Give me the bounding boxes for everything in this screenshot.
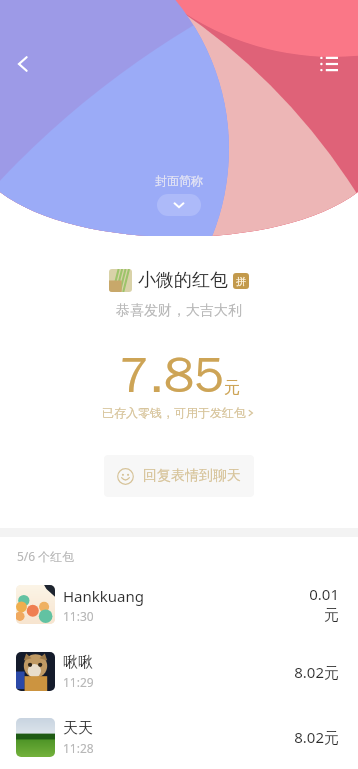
staticText: 小微的红包 [138, 269, 228, 292]
staticText: 5/6 个红包 [17, 548, 75, 564]
staticText: 8.02元 [294, 727, 339, 747]
button[interactable]: Back [5, 46, 41, 82]
staticText: 回复表情到聊天 [143, 467, 241, 485]
staticText: Hankkuang [63, 586, 145, 606]
button[interactable]: Expand cover [157, 194, 201, 216]
staticText: 7.85 [119, 344, 224, 407]
staticText: 0.01 [309, 584, 339, 604]
staticText: 11:28 [63, 740, 94, 756]
staticText: 恭喜发财，大吉大利 [116, 302, 242, 320]
staticText: 封面简称 [155, 173, 203, 188]
staticText: 元 [324, 606, 339, 625]
button[interactable]: Menu [311, 46, 347, 82]
staticText: 已存入零钱，可用于发红包 [102, 405, 246, 420]
staticText: 11:30 [63, 608, 94, 624]
button[interactable]: 啾啾 [0, 638, 358, 705]
button[interactable]: 已存入零钱，可用于发红包 [102, 405, 256, 420]
staticText: 天天 [63, 719, 93, 738]
staticText: 啾啾 [63, 653, 93, 672]
button[interactable]: 天天 [0, 705, 358, 769]
staticText: 元 [224, 378, 240, 398]
staticText: 11:29 [63, 674, 94, 690]
staticText: 拼 [236, 275, 246, 288]
button[interactable]: 回复表情到聊天 [104, 455, 254, 497]
staticText: 8.02元 [294, 662, 339, 682]
button[interactable]: Hankkuang [0, 571, 358, 638]
